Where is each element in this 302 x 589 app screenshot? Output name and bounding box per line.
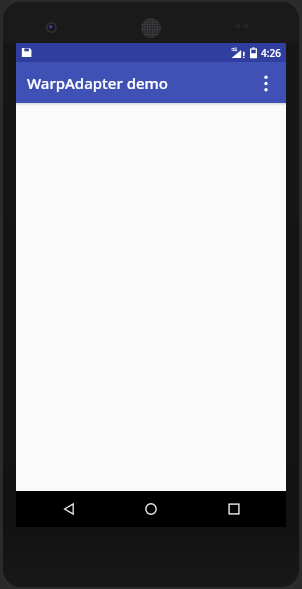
staticText: WarpAdapter demo	[27, 73, 168, 93]
button[interactable]: More options	[246, 63, 286, 103]
button[interactable]: Recent apps	[204, 491, 264, 527]
button[interactable]: Home	[121, 491, 181, 527]
button[interactable]: Back	[39, 491, 99, 527]
staticText: 4:26	[261, 46, 281, 60]
